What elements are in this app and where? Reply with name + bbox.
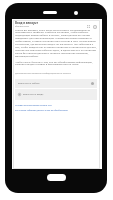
- button[interactable]: Home: [47, 174, 66, 181]
- button[interactable]: Вернуться к работе: [15, 79, 97, 88]
- staticText: Вернуться к вводу: [23, 93, 44, 96]
- staticText: в браузере Chrome: [15, 25, 29, 27]
- staticText: Вернуться к работе: [18, 82, 40, 85]
- button[interactable]: Account: [92, 24, 97, 29]
- staticText: Условия использования Google Play: [15, 104, 52, 107]
- staticText: Только вы решаете, как и когда использов…: [15, 28, 97, 58]
- button[interactable]: Apps: [86, 24, 90, 28]
- button[interactable]: Как Google собирает данные и как их обра…: [15, 109, 68, 112]
- staticText: Дополнительные параметры конфиденциально…: [15, 72, 71, 75]
- staticText: Чтобы узнать больше о том, как мы обраба…: [15, 60, 97, 66]
- staticText: Как Google собирает данные и как их обра…: [15, 109, 68, 112]
- button[interactable]: Условия использования Google Play: [15, 104, 52, 107]
- staticText: Вход в аккаунт: [15, 21, 39, 25]
- button[interactable]: Вернуться к вводу: [15, 89, 97, 100]
